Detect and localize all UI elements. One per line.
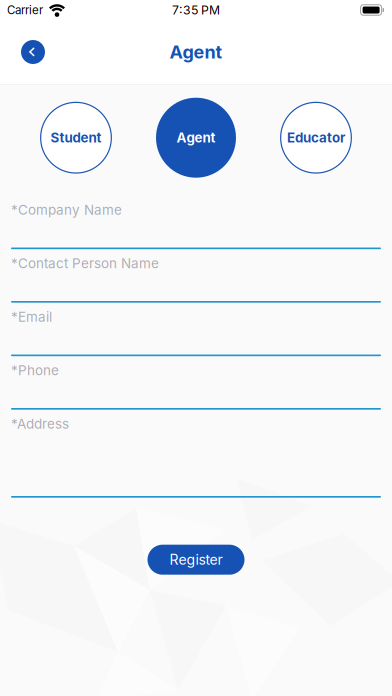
staticText: Student: [50, 130, 101, 146]
button[interactable]: Agent: [156, 98, 236, 178]
staticText: Register: [169, 551, 222, 568]
staticText: *Company Name: [11, 202, 122, 218]
button[interactable]: Register: [147, 545, 244, 575]
button[interactable]: *Address: [11, 410, 381, 498]
button[interactable]: Back: [11, 30, 55, 74]
staticText: Agent: [176, 130, 215, 146]
staticText: *Address: [11, 416, 69, 432]
button[interactable]: Educator: [280, 102, 352, 174]
button[interactable]: *Phone: [11, 356, 381, 410]
button[interactable]: *Contact Person Name: [11, 249, 381, 303]
button[interactable]: Student: [40, 102, 112, 174]
button[interactable]: *Company Name: [11, 196, 381, 249]
staticText: *Email: [11, 309, 52, 325]
staticText: 7:35 PM: [172, 3, 220, 17]
staticText: Agent: [169, 41, 222, 63]
staticText: *Phone: [11, 362, 59, 378]
staticText: Educator: [287, 130, 345, 146]
staticText: *Contact Person Name: [11, 255, 159, 271]
staticText: Carrier: [7, 3, 43, 17]
button[interactable]: *Email: [11, 303, 381, 356]
